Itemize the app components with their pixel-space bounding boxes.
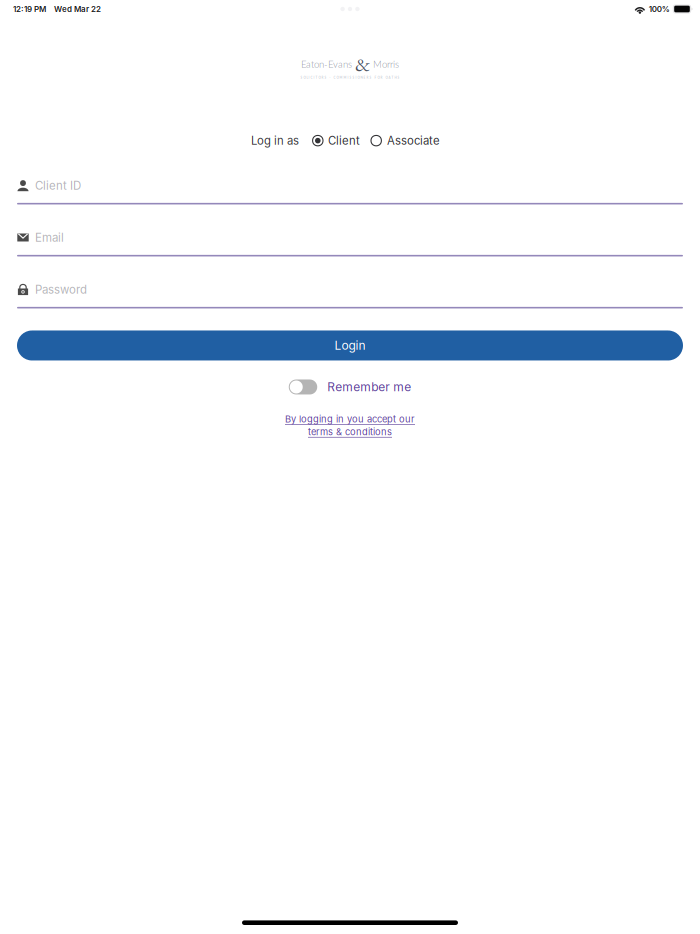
staticText: &: [355, 51, 370, 77]
button[interactable]: By logging in you accept our: [285, 413, 415, 438]
button[interactable]: Client ID: [17, 177, 683, 204]
staticText: Remember me: [327, 380, 411, 394]
staticText: Wed Mar 22: [46, 4, 101, 14]
staticText: Eaton-Evans: [301, 58, 355, 70]
staticText: By logging in you accept our: [285, 413, 415, 425]
staticText: S O L I C I T O R S · C O M M I S S I O …: [300, 76, 399, 79]
staticText: 12:19 PM: [13, 4, 46, 14]
staticText: Client: [328, 134, 360, 147]
button[interactable]: Remember me: [289, 379, 411, 394]
button[interactable]: Client: [299, 134, 360, 147]
staticText: Client ID: [35, 179, 81, 192]
staticText: Login: [334, 338, 365, 353]
staticText: Email: [35, 231, 64, 244]
button[interactable]: Associate: [360, 134, 440, 147]
staticText: Log in as: [251, 134, 299, 147]
staticText: terms & conditions: [308, 426, 392, 438]
staticText: Password: [35, 283, 87, 296]
staticText: Associate: [387, 134, 440, 147]
staticText: 100%: [649, 4, 670, 14]
button[interactable]: Password: [17, 281, 683, 308]
button[interactable]: Email: [17, 229, 683, 256]
staticText: Morris: [370, 58, 399, 70]
button[interactable]: Login: [17, 330, 683, 360]
